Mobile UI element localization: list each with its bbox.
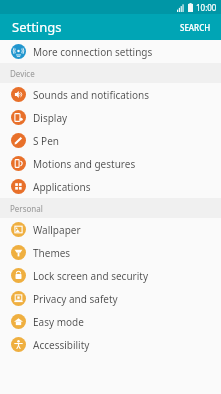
staticText: S Pen (33, 134, 59, 148)
button[interactable]: Easy mode (0, 310, 221, 333)
button[interactable]: Privacy and safety (0, 287, 221, 310)
staticText: Accessibility (33, 338, 90, 352)
staticText: Applications (33, 180, 91, 194)
staticText: Privacy and safety (33, 292, 118, 306)
staticText: Display (33, 111, 68, 125)
staticText: Wallpaper (33, 223, 81, 237)
staticText: Easy mode (33, 315, 84, 329)
button[interactable]: Applications (0, 175, 221, 198)
button[interactable]: S Pen (0, 129, 221, 152)
staticText: Personal (10, 203, 43, 214)
staticText: More connection settings (33, 45, 153, 59)
button[interactable]: Sounds and notifications (0, 83, 221, 106)
staticText: Themes (33, 246, 71, 260)
button[interactable]: Themes (0, 241, 221, 264)
staticText: 10:00 (196, 2, 217, 13)
staticText: SEARCH (180, 22, 211, 33)
button[interactable]: More connection settings (0, 40, 221, 63)
staticText: Lock screen and security (33, 269, 148, 283)
staticText: Sounds and notifications (33, 88, 150, 102)
button[interactable]: Lock screen and security (0, 264, 221, 287)
staticText: Settings (12, 18, 62, 36)
button[interactable]: Display (0, 106, 221, 129)
button[interactable]: Accessibility (0, 333, 221, 356)
staticText: Motions and gestures (33, 157, 136, 171)
staticText: Device (10, 68, 35, 79)
button[interactable]: Wallpaper (0, 218, 221, 241)
button[interactable]: Motions and gestures (0, 152, 221, 175)
button[interactable]: SEARCH (170, 17, 221, 38)
